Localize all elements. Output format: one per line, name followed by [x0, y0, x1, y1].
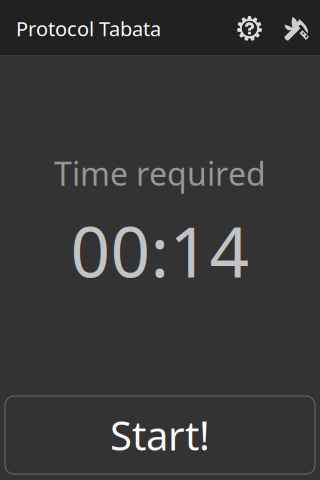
- button[interactable]: Settings: [273, 0, 320, 55]
- button[interactable]: Help: [226, 0, 273, 55]
- staticText: Time required: [54, 152, 266, 194]
- button[interactable]: Start!: [5, 396, 315, 474]
- staticText: Protocol Tabata: [16, 15, 161, 42]
- staticText: 00:14: [70, 204, 249, 297]
- staticText: Start!: [110, 408, 210, 461]
